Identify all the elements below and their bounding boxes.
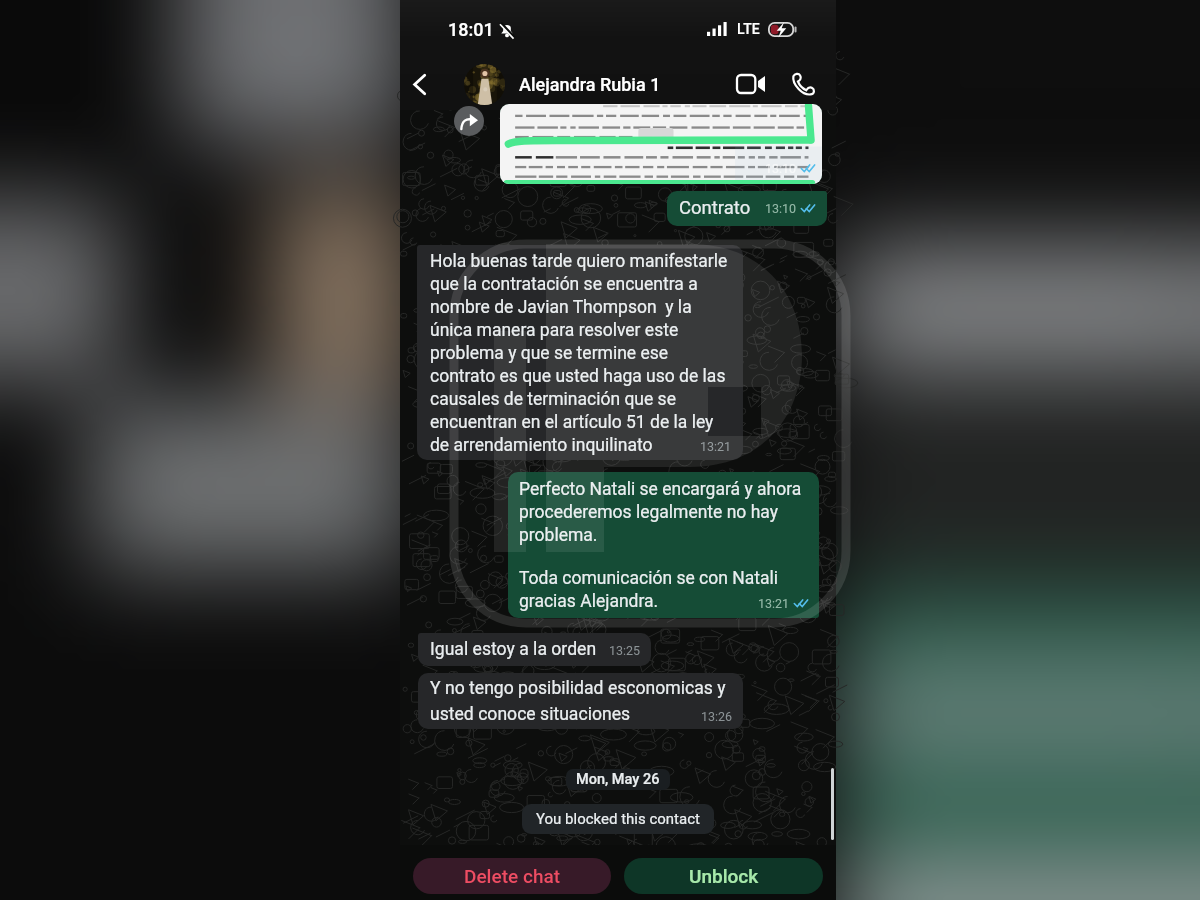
staticText: 13:25 bbox=[609, 643, 641, 658]
staticText: 13:10 bbox=[765, 161, 797, 176]
staticText: 13:26 bbox=[701, 709, 733, 724]
button[interactable]: Mon, May 26 bbox=[566, 769, 670, 790]
staticText: Delete chat bbox=[464, 865, 561, 887]
staticText: Igual estoy a la orden bbox=[430, 639, 597, 660]
button[interactable]: Delete chat bbox=[413, 858, 611, 894]
staticText: Y no tengo posibilidad esconomicas y ust… bbox=[430, 678, 733, 724]
staticText: You blocked this contact bbox=[536, 810, 700, 828]
button[interactable]: 13:10 bbox=[500, 104, 822, 184]
staticText: 13:21 bbox=[758, 596, 790, 611]
staticText: LTE bbox=[737, 21, 760, 37]
button[interactable]: Y no tengo posibilidad esconomicas y ust… bbox=[418, 673, 743, 729]
staticText: Mon, May 26 bbox=[576, 771, 660, 788]
staticText: 18:01 bbox=[448, 19, 494, 40]
staticText: 13:21 bbox=[700, 439, 732, 454]
staticText: Hola buenas tarde quiero manifestarle qu… bbox=[430, 251, 732, 455]
staticText: Perfecto Natali se encargará y ahora pro… bbox=[519, 479, 809, 545]
button[interactable]: Contact photo bbox=[464, 64, 505, 105]
button[interactable]: Perfecto Natali se encargará y ahora pro… bbox=[508, 472, 819, 618]
button[interactable]: Video call bbox=[729, 63, 771, 105]
staticText: Unblock bbox=[689, 865, 759, 887]
button[interactable]: Unblock bbox=[624, 858, 823, 894]
button[interactable]: Igual estoy a la orden bbox=[418, 633, 651, 666]
staticText: Toda comunicación se con Natali gracias … bbox=[519, 568, 809, 611]
button[interactable]: Voice call bbox=[782, 63, 824, 105]
button[interactable]: Contrato bbox=[667, 191, 827, 226]
button[interactable]: Back bbox=[402, 66, 438, 102]
button[interactable]: Forward bbox=[454, 106, 484, 136]
button[interactable]: Alejandra Rubia 1 bbox=[519, 74, 661, 95]
staticText: Contrato bbox=[679, 197, 751, 219]
button[interactable]: Hola buenas tarde quiero manifestarle qu… bbox=[417, 245, 743, 460]
button[interactable]: You blocked this contact bbox=[522, 804, 714, 834]
staticText: 13:10 bbox=[765, 201, 797, 216]
